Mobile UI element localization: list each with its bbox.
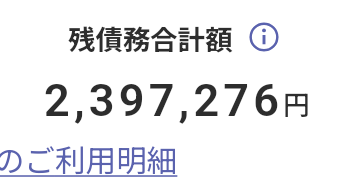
staticText: 残債務合計額 — [68, 18, 233, 58]
staticText: カードのご利用明細 — [0, 137, 178, 181]
staticText: 2,397,276 — [44, 74, 284, 127]
button[interactable]: 残債務合計額の詳細情報 — [249, 22, 279, 52]
staticText: 円 — [283, 84, 310, 123]
button[interactable]: カードのご利用明細 — [0, 137, 178, 181]
